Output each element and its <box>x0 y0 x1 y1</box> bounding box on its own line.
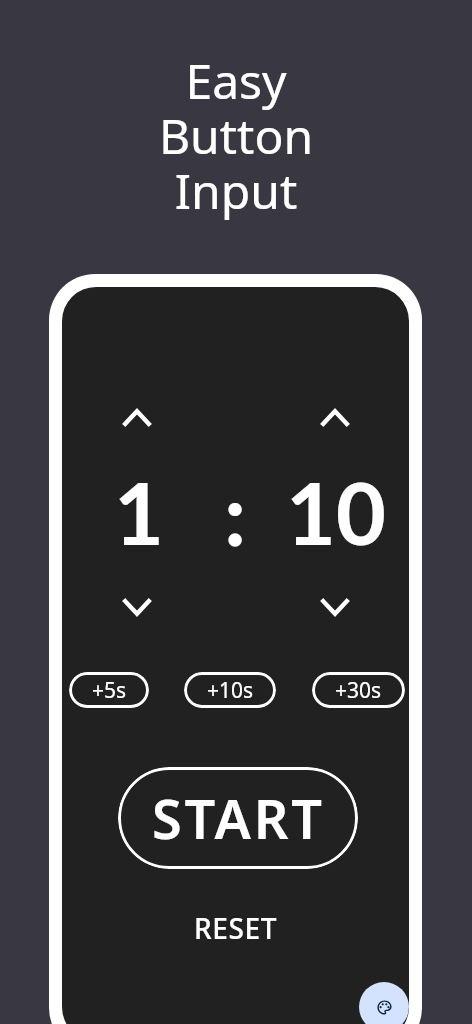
staticText: RESET <box>194 909 278 947</box>
button[interactable]: +30s <box>312 672 405 708</box>
staticText: : <box>224 461 247 564</box>
staticText: +10s <box>207 676 254 705</box>
button[interactable]: Increase seconds <box>311 395 359 440</box>
button[interactable]: Decrease minutes <box>113 585 161 630</box>
staticText: START <box>152 781 325 855</box>
button[interactable]: Change theme <box>359 982 409 1024</box>
button[interactable]: Increase minutes <box>113 395 161 440</box>
button[interactable]: RESET <box>176 902 296 954</box>
staticText: +5s <box>92 676 127 705</box>
button[interactable]: START <box>118 767 358 869</box>
button[interactable]: +5s <box>69 672 149 708</box>
staticText: +30s <box>335 676 382 705</box>
staticText: Easy Button Input <box>0 48 472 224</box>
button[interactable]: Decrease seconds <box>311 585 359 630</box>
button[interactable]: +10s <box>184 672 276 708</box>
staticText: 10 <box>286 460 386 563</box>
staticText: 1 <box>114 460 164 563</box>
